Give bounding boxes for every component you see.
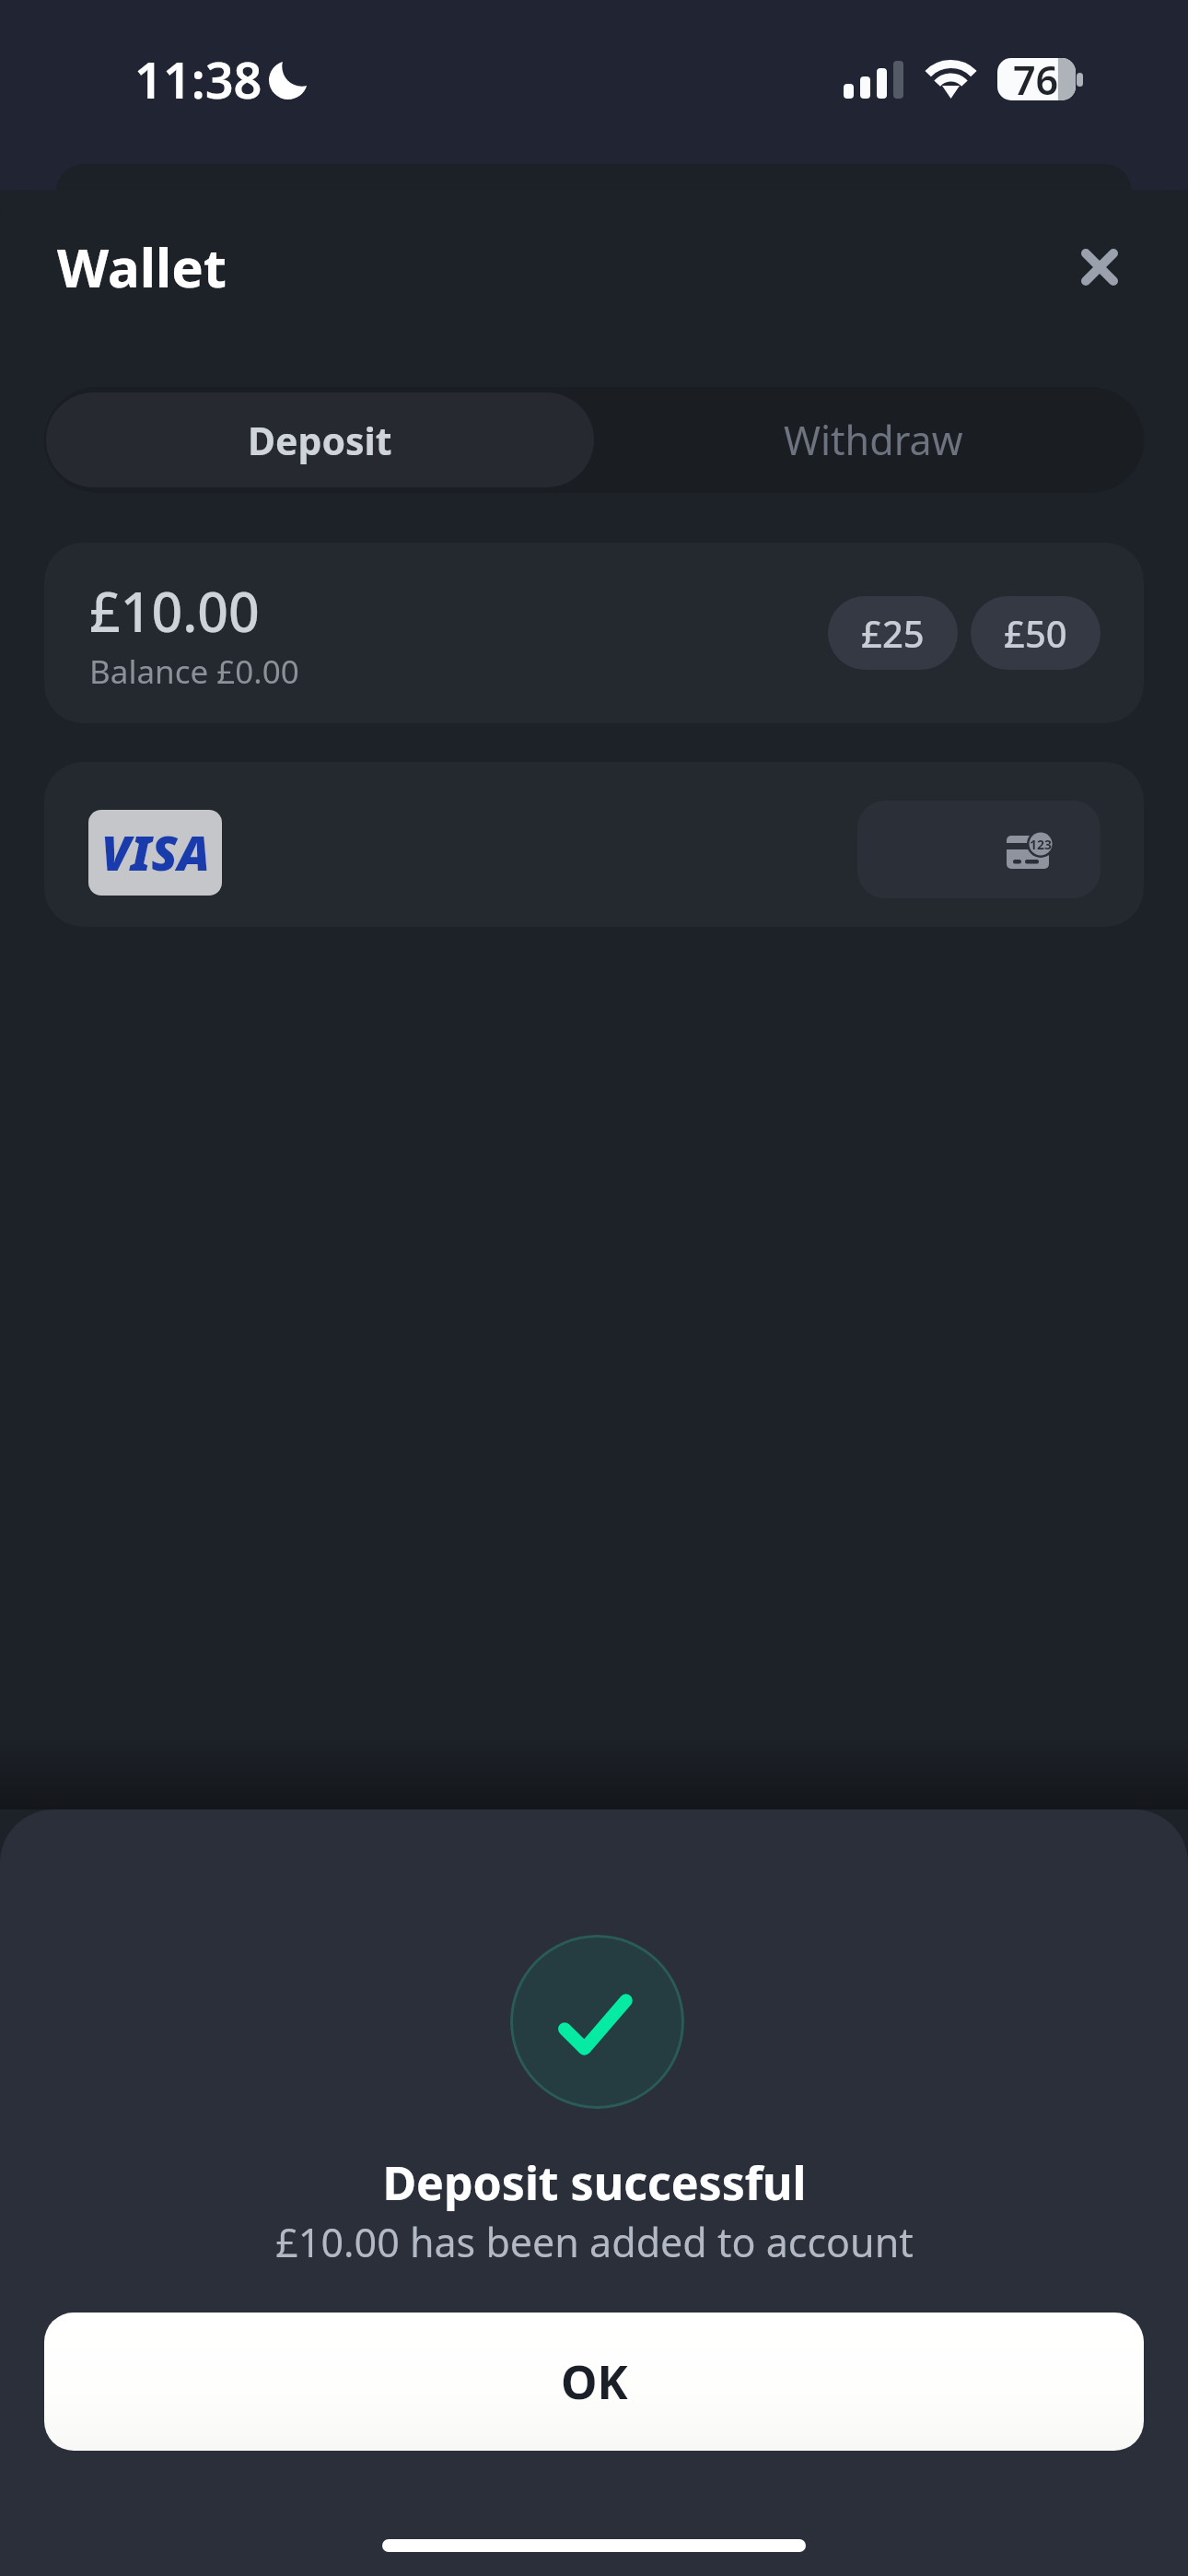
staticText: Deposit successful (382, 2151, 807, 2214)
button[interactable]: Withdraw (594, 392, 1142, 487)
staticText: £10.00 (89, 574, 260, 648)
staticText: 123 (1030, 836, 1053, 853)
staticText: 11:38 (134, 45, 262, 113)
button[interactable]: Deposit (46, 392, 594, 487)
staticText: Deposit (248, 415, 392, 466)
button[interactable]: £50 (971, 596, 1101, 670)
staticText: Wallet (57, 230, 227, 303)
button[interactable]: Close (1063, 230, 1136, 304)
staticText: 76 (1013, 53, 1059, 107)
staticText: Balance £0.00 (89, 650, 299, 694)
button[interactable]: Enter CVV (857, 801, 1101, 898)
staticText: £10.00 has been added to account (275, 2215, 914, 2269)
staticText: Withdraw (784, 413, 963, 467)
button[interactable]: £25 (828, 596, 958, 670)
staticText: £50 (1004, 608, 1067, 658)
staticText: VISA (101, 819, 210, 884)
staticText: OK (561, 2350, 628, 2413)
button[interactable]: OK (44, 2313, 1144, 2451)
staticText: £25 (861, 608, 925, 658)
